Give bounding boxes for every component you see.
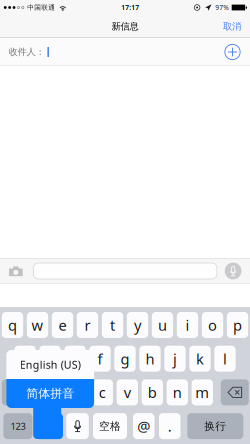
- staticText: 简体拼音: [26, 386, 74, 401]
- button[interactable]: g: [114, 346, 136, 372]
- button[interactable]: .: [159, 413, 180, 439]
- button[interactable]: h: [139, 346, 161, 372]
- staticText: r: [84, 315, 90, 335]
- button[interactable]: Dictate: [225, 263, 241, 279]
- staticText: v: [124, 383, 131, 402]
- staticText: t: [110, 315, 115, 335]
- staticText: j: [173, 349, 177, 368]
- staticText: 中国联通: [27, 3, 55, 12]
- staticText: i: [185, 315, 189, 335]
- staticText: e: [58, 315, 66, 335]
- button[interactable]: t: [102, 312, 123, 338]
- button[interactable]: b: [142, 379, 163, 405]
- button[interactable]: p: [227, 312, 248, 338]
- staticText: l: [223, 349, 227, 368]
- button[interactable]: Dictate: [66, 413, 89, 439]
- staticText: c: [99, 383, 106, 402]
- button[interactable]: a: [14, 346, 36, 372]
- button[interactable]: Switch keyboard: [35, 413, 63, 439]
- button[interactable]: j: [164, 346, 186, 372]
- button[interactable]: @: [133, 413, 154, 439]
- button[interactable]: d: [64, 346, 86, 372]
- staticText: x: [73, 383, 81, 402]
- staticText: 17:17: [121, 3, 139, 12]
- button[interactable]: k: [189, 346, 211, 372]
- staticText: 收件人：: [8, 46, 44, 58]
- staticText: s: [46, 349, 53, 368]
- staticText: b: [148, 383, 157, 402]
- staticText: m: [195, 383, 209, 402]
- staticText: w: [31, 315, 43, 335]
- button[interactable]: y: [127, 312, 148, 338]
- button[interactable]: o: [202, 312, 223, 338]
- staticText: f: [97, 349, 102, 368]
- staticText: u: [158, 315, 167, 335]
- staticText: @: [137, 416, 150, 436]
- button[interactable]: f: [89, 346, 111, 372]
- button[interactable]: u: [152, 312, 173, 338]
- button[interactable]: c: [92, 379, 113, 405]
- button[interactable]: v: [117, 379, 138, 405]
- staticText: g: [120, 349, 129, 368]
- button[interactable]: 换行: [187, 413, 243, 439]
- staticText: n: [173, 383, 182, 402]
- staticText: d: [70, 349, 79, 368]
- button[interactable]: 123: [3, 413, 32, 439]
- button[interactable]: 空格: [93, 413, 127, 439]
- staticText: o: [208, 315, 217, 335]
- staticText: p: [233, 315, 242, 335]
- button[interactable]: l: [214, 346, 236, 372]
- button[interactable]: i: [177, 312, 198, 338]
- staticText: 新信息: [111, 21, 138, 32]
- button[interactable]: Delete: [221, 379, 249, 405]
- button[interactable]: s: [39, 346, 61, 372]
- staticText: 取消: [223, 21, 241, 32]
- button[interactable]: x: [67, 379, 88, 405]
- staticText: h: [145, 349, 154, 368]
- button[interactable]: e: [52, 312, 73, 338]
- staticText: k: [196, 349, 204, 368]
- button[interactable]: w: [27, 312, 48, 338]
- button[interactable]: Add recipient: [224, 43, 241, 60]
- button[interactable]: r: [77, 312, 98, 338]
- button[interactable]: m: [192, 379, 213, 405]
- staticText: z: [49, 383, 56, 402]
- staticText: 空格: [99, 419, 121, 433]
- staticText: 换行: [204, 419, 226, 433]
- staticText: 97%: [215, 3, 229, 12]
- button[interactable]: Shift: [2, 379, 34, 405]
- button[interactable]: Camera: [9, 266, 23, 276]
- button[interactable]: z: [42, 379, 63, 405]
- staticText: 123: [10, 420, 25, 432]
- button[interactable]: n: [167, 379, 188, 405]
- staticText: English (US): [20, 357, 81, 372]
- staticText: .: [168, 416, 172, 436]
- staticText: y: [134, 315, 141, 335]
- staticText: q: [8, 315, 17, 335]
- button[interactable]: q: [2, 312, 23, 338]
- button[interactable]: 取消: [215, 15, 250, 38]
- staticText: a: [21, 349, 29, 368]
